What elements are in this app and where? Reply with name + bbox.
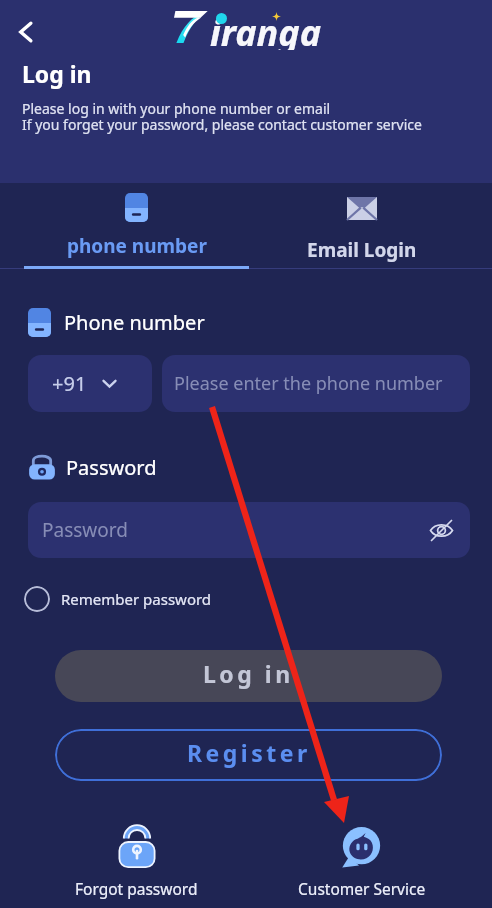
button[interactable]: Register (55, 729, 442, 781)
staticText: Register (187, 737, 311, 768)
button[interactable]: Password (28, 502, 470, 558)
button[interactable]: phone number (24, 183, 249, 259)
staticText: Remember password (61, 589, 212, 609)
staticText: +91 (52, 370, 87, 397)
staticText: Password (66, 454, 157, 481)
staticText: Log in (22, 58, 92, 89)
staticText: Please log in with your phone number or … (22, 99, 422, 134)
staticText: Phone number (64, 309, 205, 336)
staticText: Log in (203, 658, 294, 689)
button[interactable]: Log in (55, 650, 442, 702)
staticText: Password (42, 517, 128, 543)
staticText: Please enter the phone number (174, 371, 443, 396)
staticText: Email Login (307, 237, 417, 263)
button[interactable]: Email Login (249, 183, 474, 263)
staticText: phone number (67, 233, 207, 259)
staticText: iranga (210, 8, 322, 50)
button[interactable]: Remember password (24, 586, 220, 612)
button[interactable]: Back (8, 14, 44, 50)
button[interactable]: Please enter the phone number (162, 355, 470, 412)
button[interactable]: Show password (424, 513, 458, 547)
button[interactable]: Forgot password (24, 824, 249, 899)
button[interactable]: Customer Service (249, 824, 474, 899)
staticText: Forgot password (75, 878, 198, 899)
staticText: Customer Service (298, 878, 426, 899)
button[interactable]: +91 (28, 355, 152, 412)
